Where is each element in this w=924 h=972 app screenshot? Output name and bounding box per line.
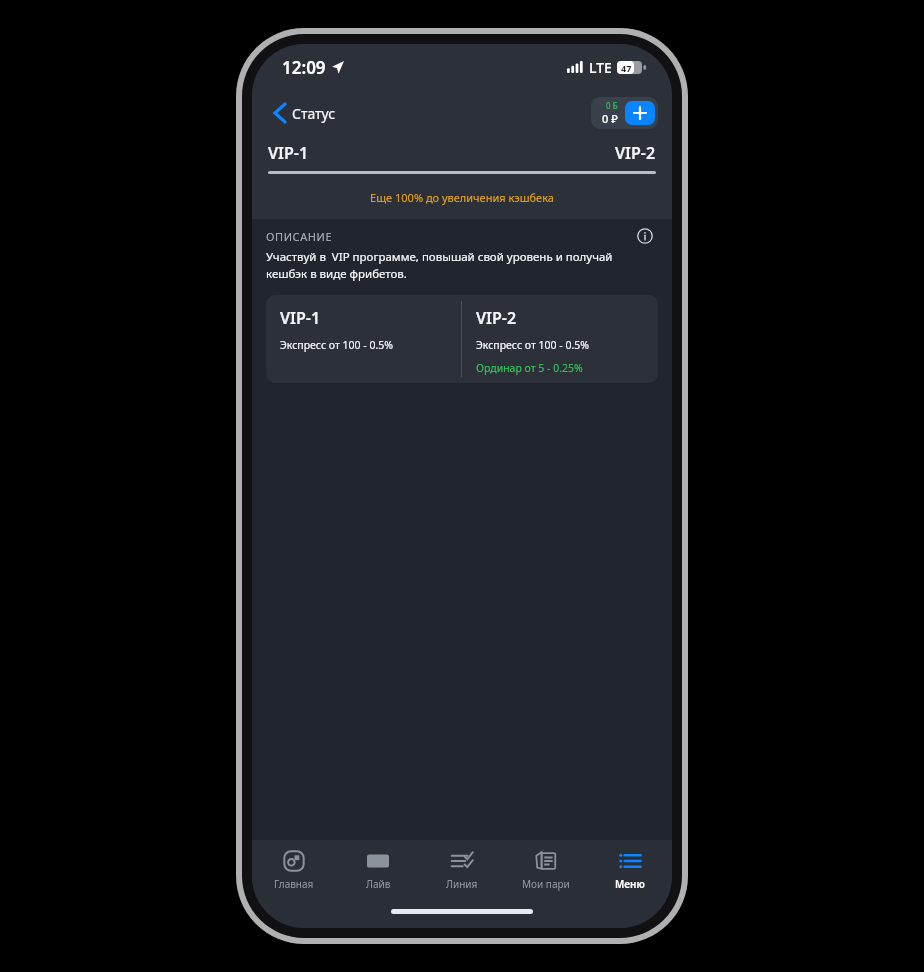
staticText: 0 Б	[606, 100, 618, 111]
staticText: VIP-1	[268, 142, 309, 164]
staticText: Участвуй в VIP программе, повышай свой у…	[266, 249, 613, 281]
staticText: Линия	[446, 877, 478, 891]
button[interactable]: Меню	[588, 840, 672, 902]
button[interactable]: Информация	[632, 223, 658, 249]
staticText: VIP-2	[615, 142, 656, 164]
button[interactable]: 0 Б	[591, 97, 658, 129]
button[interactable]: Линия	[420, 840, 504, 902]
staticText: Главная	[274, 877, 314, 891]
button[interactable]: Главная	[252, 840, 336, 902]
staticText: Экспресс от 100 - 0.5%	[476, 338, 590, 352]
staticText: VIP-1	[280, 307, 321, 329]
button[interactable]: Мои пари	[504, 840, 588, 902]
staticText: 12:09	[282, 56, 326, 79]
staticText: VIP-2	[476, 307, 517, 329]
staticText: Ординар от 5 - 0.25%	[476, 361, 583, 375]
staticText: ОПИСАНИЕ	[266, 229, 333, 244]
button[interactable]: Лайв	[336, 840, 420, 902]
staticText: LTE	[589, 58, 612, 77]
staticText: 0 ₽	[602, 111, 618, 126]
button[interactable]: Статус	[266, 97, 344, 129]
staticText: Меню	[615, 877, 645, 891]
staticText: 47	[621, 62, 632, 74]
staticText: Лайв	[366, 877, 391, 891]
staticText: Статус	[292, 104, 336, 123]
staticText: Экспресс от 100 - 0.5%	[280, 338, 394, 352]
staticText: Еще 100% до увеличения кэшбека	[252, 190, 672, 205]
button[interactable]: VIP-1	[266, 295, 461, 383]
button[interactable]: Пополнить	[625, 101, 655, 125]
staticText: Мои пари	[522, 877, 570, 891]
button[interactable]: VIP-2	[462, 295, 658, 383]
